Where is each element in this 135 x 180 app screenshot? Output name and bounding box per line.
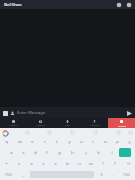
button[interactable]: v <box>49 158 61 169</box>
staticText: w <box>18 139 22 145</box>
button[interactable]: Stickers <box>25 130 30 135</box>
staticText: l <box>111 150 113 156</box>
staticText: m <box>89 161 93 167</box>
staticText: ?123 <box>5 173 12 177</box>
button[interactable]: Settings <box>116 130 121 135</box>
staticText: Camera <box>36 124 45 127</box>
staticText: Gallery <box>10 124 18 127</box>
staticText: ?123 <box>123 173 130 177</box>
button[interactable]: Enter Message <box>17 107 125 118</box>
staticText: q <box>5 139 8 145</box>
button[interactable]: b <box>61 158 73 169</box>
button[interactable]: ? <box>109 158 121 169</box>
staticText: z <box>18 161 20 167</box>
button[interactable]: l <box>105 147 118 158</box>
button[interactable]: z <box>13 158 25 169</box>
staticText: , <box>22 172 24 178</box>
button[interactable]: Gallery <box>0 118 27 128</box>
button[interactable]: Emoji <box>96 169 107 180</box>
button[interactable]: Record <box>108 118 135 128</box>
button[interactable]: Bel Shon <box>3 2 23 8</box>
button[interactable]: n <box>73 158 85 169</box>
button[interactable]: k <box>92 147 105 158</box>
staticText: u <box>80 139 83 145</box>
button[interactable]: Video call <box>116 2 122 8</box>
staticText: v <box>54 161 57 167</box>
staticText: o <box>104 139 107 145</box>
button[interactable]: p <box>111 137 123 147</box>
button[interactable]: Files <box>54 118 81 128</box>
staticText: Files <box>65 124 70 127</box>
staticText: Bel Shon <box>4 2 22 8</box>
button[interactable]: GIF <box>47 130 52 135</box>
button[interactable]: w <box>13 137 26 147</box>
button[interactable]: Shift <box>0 158 13 169</box>
staticText: h <box>71 150 74 156</box>
button[interactable]: h <box>66 147 79 158</box>
staticText: d <box>34 150 37 156</box>
button[interactable]: ?123 <box>118 169 135 180</box>
staticText: p <box>116 139 119 145</box>
button[interactable]: y <box>63 137 75 147</box>
button[interactable]: a <box>5 147 17 158</box>
button[interactable]: t <box>51 137 63 147</box>
staticText: x <box>30 161 33 167</box>
button[interactable]: f <box>41 147 53 158</box>
button[interactable]: Backspace <box>123 137 135 147</box>
staticText: r <box>44 139 46 145</box>
button[interactable]: c <box>37 158 49 169</box>
button[interactable]: d <box>29 147 41 158</box>
button[interactable]: Camera <box>27 118 54 128</box>
button[interactable]: Contacts <box>81 118 108 128</box>
button[interactable]: s <box>17 147 29 158</box>
button[interactable]: Clipboard <box>70 130 75 135</box>
button[interactable]: o <box>99 137 111 147</box>
button[interactable]: ! <box>97 158 109 169</box>
button[interactable]: e <box>26 137 39 147</box>
staticText: n <box>78 161 81 167</box>
button[interactable]: Translate <box>93 130 98 135</box>
staticText: a <box>10 150 13 156</box>
button[interactable]: q <box>0 137 13 147</box>
staticText: Contacts <box>90 124 100 127</box>
staticText: k <box>97 150 100 156</box>
staticText: e <box>31 139 34 145</box>
button[interactable]: x <box>25 158 37 169</box>
staticText: ! <box>102 161 104 167</box>
staticText: . <box>112 172 114 178</box>
staticText: Record <box>118 124 126 127</box>
button[interactable]: Attach media <box>2 110 8 116</box>
button[interactable]: Contact <box>9 110 15 116</box>
button[interactable]: More options <box>126 2 132 8</box>
staticText: j <box>85 150 87 156</box>
button[interactable]: i <box>87 137 99 147</box>
staticText: Enter Message <box>17 110 45 115</box>
button[interactable]: Send <box>125 109 133 117</box>
staticText: c <box>42 161 45 167</box>
staticText: i <box>92 139 94 145</box>
staticText: b <box>66 161 69 167</box>
staticText: ? <box>114 161 116 167</box>
button[interactable]: More <box>128 130 133 135</box>
button[interactable]: g <box>53 147 66 158</box>
button[interactable]: r <box>39 137 51 147</box>
button[interactable]: u <box>75 137 87 147</box>
staticText: y <box>68 139 71 145</box>
button[interactable]: Google <box>2 130 8 136</box>
staticText: s <box>22 150 25 156</box>
staticText: g <box>58 150 61 156</box>
staticText: t <box>56 139 58 145</box>
button[interactable]: ?123 <box>0 169 17 180</box>
button[interactable]: Enter <box>119 148 131 157</box>
staticText: f <box>46 150 48 156</box>
button[interactable]: Delete <box>121 158 135 169</box>
button[interactable]: j <box>79 147 92 158</box>
button[interactable]: m <box>85 158 97 169</box>
